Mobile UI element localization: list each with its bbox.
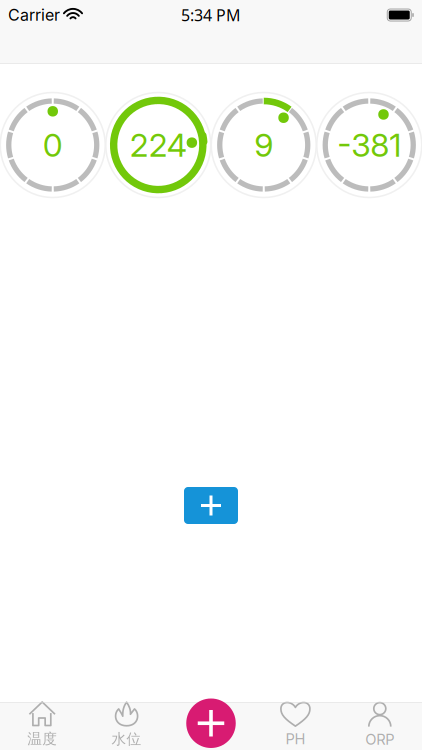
staticText: -381 xyxy=(337,126,401,164)
button[interactable]: Add xyxy=(184,487,238,524)
staticText: 0 xyxy=(43,126,63,164)
button[interactable]: 温度 xyxy=(0,702,84,750)
staticText: 9 xyxy=(254,126,273,164)
button[interactable]: 水位 xyxy=(84,702,169,750)
button[interactable]: Add reading xyxy=(186,698,236,748)
staticText: 224 xyxy=(130,126,187,164)
staticText: ORP xyxy=(365,731,394,748)
staticText: PH xyxy=(285,730,305,748)
button[interactable]: ORP xyxy=(338,702,422,750)
button[interactable]: PH xyxy=(253,702,338,750)
staticText: 温度 xyxy=(27,729,57,748)
staticText: Carrier xyxy=(8,5,60,25)
staticText: 5:34 PM xyxy=(181,4,241,26)
staticText: 水位 xyxy=(112,730,142,748)
